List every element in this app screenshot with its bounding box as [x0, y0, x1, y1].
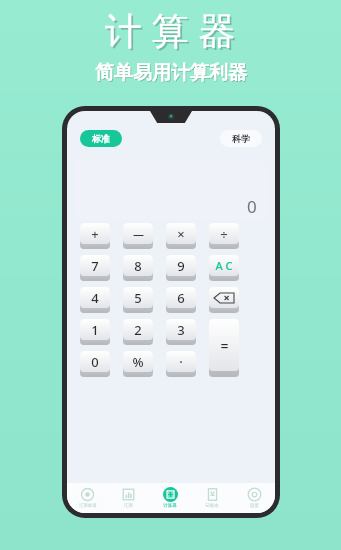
button[interactable]: 0: [80, 351, 110, 377]
button[interactable]: 3: [166, 319, 196, 345]
button[interactable]: %: [123, 351, 153, 377]
staticText: 计算器: [163, 503, 177, 509]
button[interactable]: 设置: [233, 483, 275, 513]
button[interactable]: +: [80, 223, 110, 249]
button[interactable]: 5: [123, 287, 153, 313]
staticText: 6: [177, 289, 185, 307]
staticText: 7: [91, 257, 99, 275]
staticText: 计 算 器: [105, 4, 236, 55]
staticText: 8: [134, 257, 142, 275]
staticText: 2: [134, 321, 142, 339]
staticText: ·: [179, 353, 183, 371]
staticText: 5: [134, 289, 142, 307]
button[interactable]: 汇率: [108, 483, 149, 513]
staticText: =: [220, 336, 229, 355]
staticText: 1: [91, 321, 99, 339]
staticText: —: [133, 226, 144, 241]
button[interactable]: 汇率换算: [67, 483, 108, 513]
button[interactable]: A C: [209, 255, 239, 281]
button[interactable]: ·: [166, 351, 196, 377]
staticText: 9: [177, 257, 185, 275]
button[interactable]: ×: [166, 223, 196, 249]
button[interactable]: 计算器: [149, 483, 191, 513]
staticText: 设置: [250, 503, 259, 509]
button[interactable]: 标准: [80, 130, 122, 147]
button[interactable]: =: [209, 319, 239, 377]
staticText: A C: [215, 258, 233, 273]
staticText: %: [132, 353, 144, 371]
button[interactable]: 9: [166, 255, 196, 281]
button[interactable]: ÷: [209, 223, 239, 249]
button[interactable]: 7: [80, 255, 110, 281]
staticText: 汇率: [124, 503, 133, 509]
staticText: 记账本: [205, 503, 219, 509]
button[interactable]: 2: [123, 319, 153, 345]
staticText: 科学: [232, 133, 250, 144]
staticText: ×: [177, 225, 185, 243]
staticText: 标准: [92, 133, 110, 144]
button[interactable]: —: [123, 223, 153, 249]
staticText: 汇率换算: [79, 503, 97, 509]
button[interactable]: 6: [166, 287, 196, 313]
staticText: 3: [177, 321, 185, 339]
staticText: 计 算 器: [107, 6, 238, 57]
button[interactable]: 记账本: [191, 483, 233, 513]
button[interactable]: 科学: [220, 130, 262, 147]
button[interactable]: [209, 287, 239, 313]
staticText: ÷: [220, 225, 228, 243]
staticText: 简单易用计算利器: [96, 62, 248, 86]
staticText: 0: [91, 353, 99, 371]
staticText: +: [91, 225, 99, 243]
staticText: 0: [247, 195, 257, 218]
staticText: 简单易用计算利器: [95, 61, 247, 85]
button[interactable]: 8: [123, 255, 153, 281]
staticText: 4: [91, 289, 99, 307]
button[interactable]: 4: [80, 287, 110, 313]
button[interactable]: 1: [80, 319, 110, 345]
